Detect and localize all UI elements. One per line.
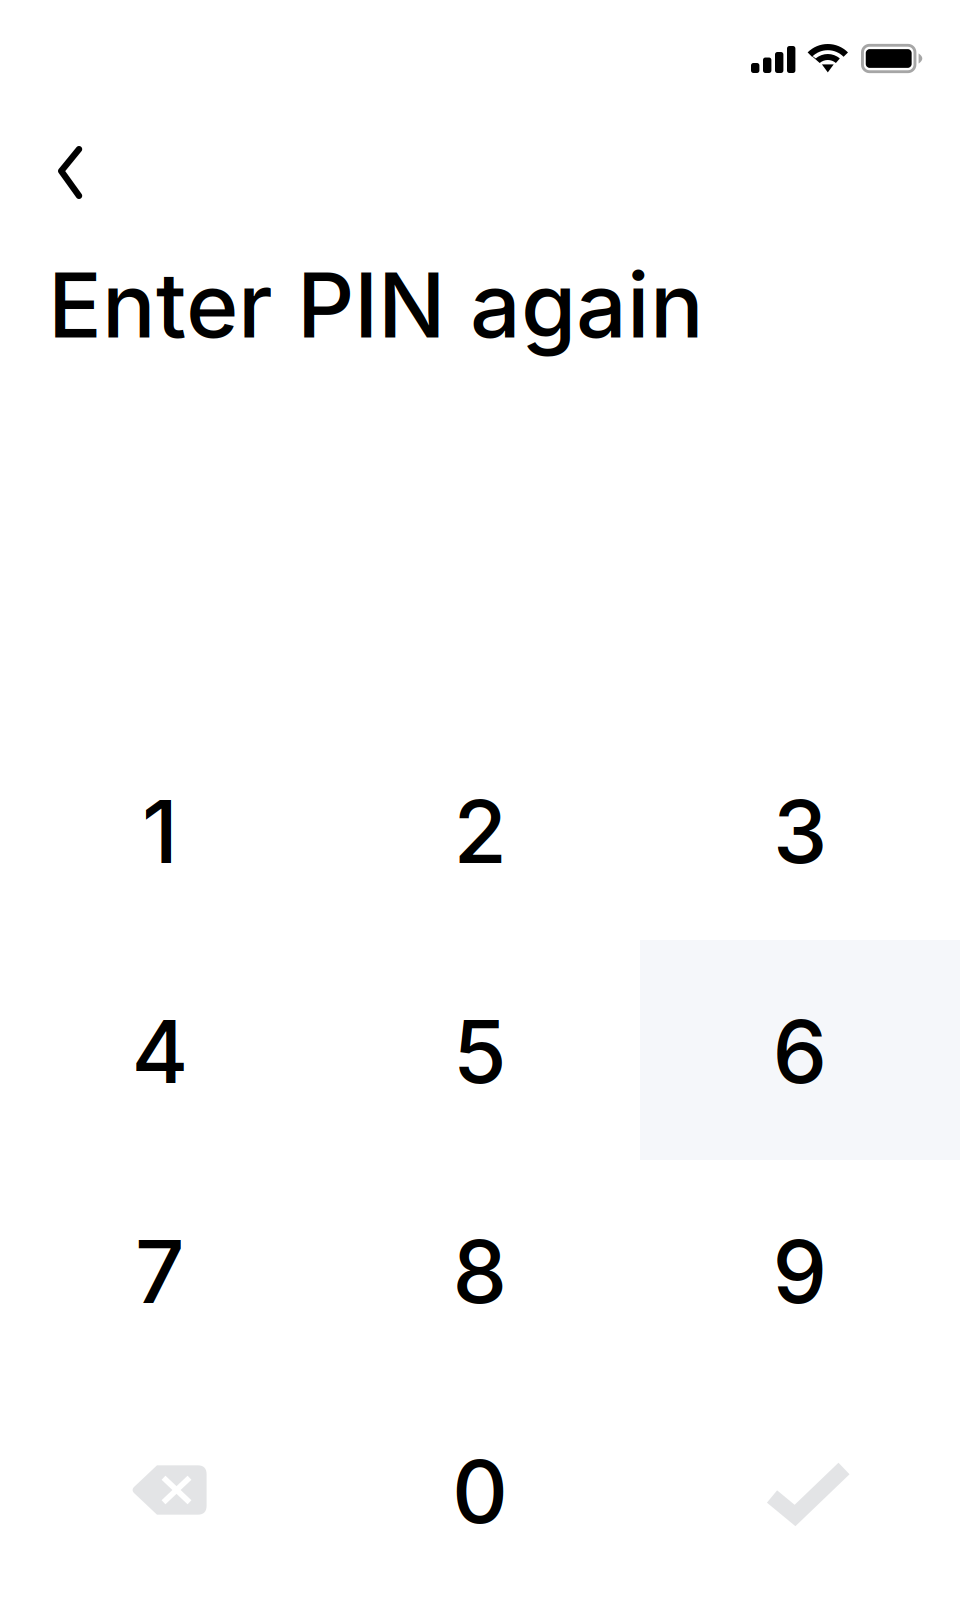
button[interactable]: 6 — [640, 940, 960, 1160]
button[interactable]: 4 — [0, 940, 320, 1160]
staticText: Enter PIN again — [48, 251, 704, 359]
staticText: 3 — [773, 779, 827, 884]
button[interactable]: 0 — [320, 1380, 640, 1600]
button[interactable]: Confirm — [640, 1380, 960, 1600]
button[interactable]: Back — [0, 120, 105, 225]
staticText: 1 — [142, 779, 178, 884]
staticText: 4 — [131, 999, 188, 1104]
staticText: 2 — [453, 779, 506, 884]
staticText: 0 — [452, 1439, 508, 1544]
button[interactable]: 3 — [640, 720, 960, 940]
staticText: 8 — [452, 1219, 507, 1324]
button[interactable]: Delete — [0, 1380, 320, 1600]
button[interactable]: 1 — [0, 720, 320, 940]
staticText: 7 — [135, 1219, 185, 1324]
button[interactable]: 2 — [320, 720, 640, 940]
staticText: 9 — [772, 1219, 827, 1324]
button[interactable]: 8 — [320, 1160, 640, 1380]
button[interactable]: 9 — [640, 1160, 960, 1380]
button[interactable]: 5 — [320, 940, 640, 1160]
staticText: 5 — [453, 999, 507, 1104]
staticText: 6 — [772, 999, 827, 1104]
button[interactable]: 7 — [0, 1160, 320, 1380]
